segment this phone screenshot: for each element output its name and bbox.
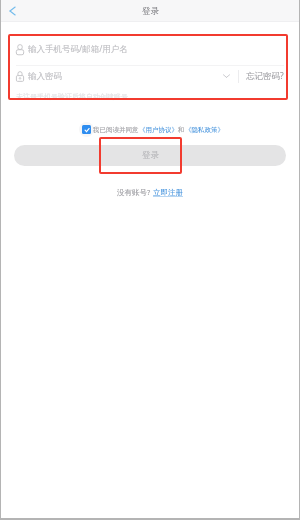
staticText: 我已阅读并同意 — [93, 126, 139, 134]
button[interactable]: 输入手机号码/邮箱/用户名 — [16, 38, 284, 60]
staticText: 输入手机号码/邮箱/用户名 — [28, 43, 128, 55]
staticText: 没有账号? — [117, 187, 153, 197]
staticText: 输入密码 — [28, 71, 62, 82]
button[interactable]: 输入密码 — [28, 71, 62, 82]
button[interactable]: 《用户协议》 — [139, 126, 178, 134]
staticText: 登录 — [142, 150, 159, 161]
button[interactable]: 登录 — [14, 145, 286, 166]
staticText: 和 — [178, 126, 185, 134]
staticText: 忘记密码? — [246, 70, 284, 82]
staticText: 《隐私政策》 — [185, 126, 224, 134]
button[interactable]: 《隐私政策》 — [185, 126, 224, 134]
button[interactable]: 忘记密码? — [246, 66, 284, 86]
staticText: 未注册手机号验证后将自动创建账号 — [16, 92, 128, 101]
button[interactable]: 立即注册 — [153, 188, 183, 197]
staticText: 《用户协议》 — [139, 126, 178, 134]
button[interactable]: Agree to terms — [79, 122, 94, 137]
button[interactable]: Back — [4, 0, 20, 21]
staticText: 立即注册 — [153, 188, 183, 197]
staticText: 登录 — [142, 6, 159, 17]
button[interactable]: Show password options — [219, 68, 233, 84]
